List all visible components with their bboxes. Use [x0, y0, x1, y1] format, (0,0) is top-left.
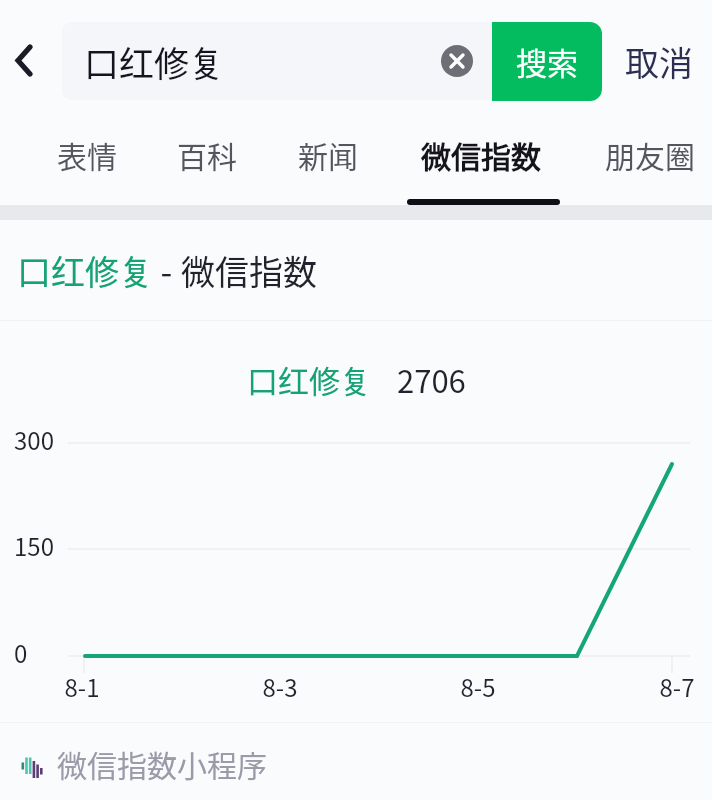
button[interactable]: Clear search text	[441, 45, 473, 77]
staticText: 口红修复	[247, 357, 371, 402]
staticText: 300	[14, 422, 54, 457]
staticText: -	[153, 246, 181, 295]
button[interactable]: 口红修复	[62, 22, 492, 100]
button[interactable]: 百科	[157, 120, 257, 204]
staticText: 8-7	[642, 669, 712, 704]
staticText: 8-3	[245, 669, 315, 704]
button[interactable]: 搜索	[492, 22, 602, 101]
staticText: 取消	[625, 37, 693, 86]
staticText: 2706	[397, 357, 466, 402]
staticText: 150	[14, 528, 54, 563]
staticText: 微信指数	[421, 133, 541, 176]
button[interactable]: 新闻	[278, 120, 378, 204]
staticText: 口红修复	[17, 246, 153, 295]
staticText: 新闻	[298, 133, 358, 176]
staticText: 百科	[177, 133, 237, 176]
button[interactable]: 表情	[37, 120, 137, 204]
staticText: 8-5	[443, 669, 513, 704]
button[interactable]: 微信指数	[406, 120, 556, 204]
staticText: 8-1	[47, 669, 117, 704]
staticText: 0	[14, 635, 28, 670]
button[interactable]: 微信指数小程序	[0, 725, 712, 800]
staticText: 口红修复	[84, 36, 225, 87]
staticText: 朋友圈	[605, 133, 695, 176]
staticText: 表情	[57, 133, 117, 176]
button[interactable]: Back	[0, 20, 52, 100]
staticText: 搜索	[516, 39, 578, 84]
button[interactable]: 取消	[606, 22, 712, 100]
staticText: 微信指数小程序	[57, 742, 267, 785]
button[interactable]: 朋友圈	[590, 120, 710, 204]
staticText: 微信指数	[181, 246, 317, 295]
